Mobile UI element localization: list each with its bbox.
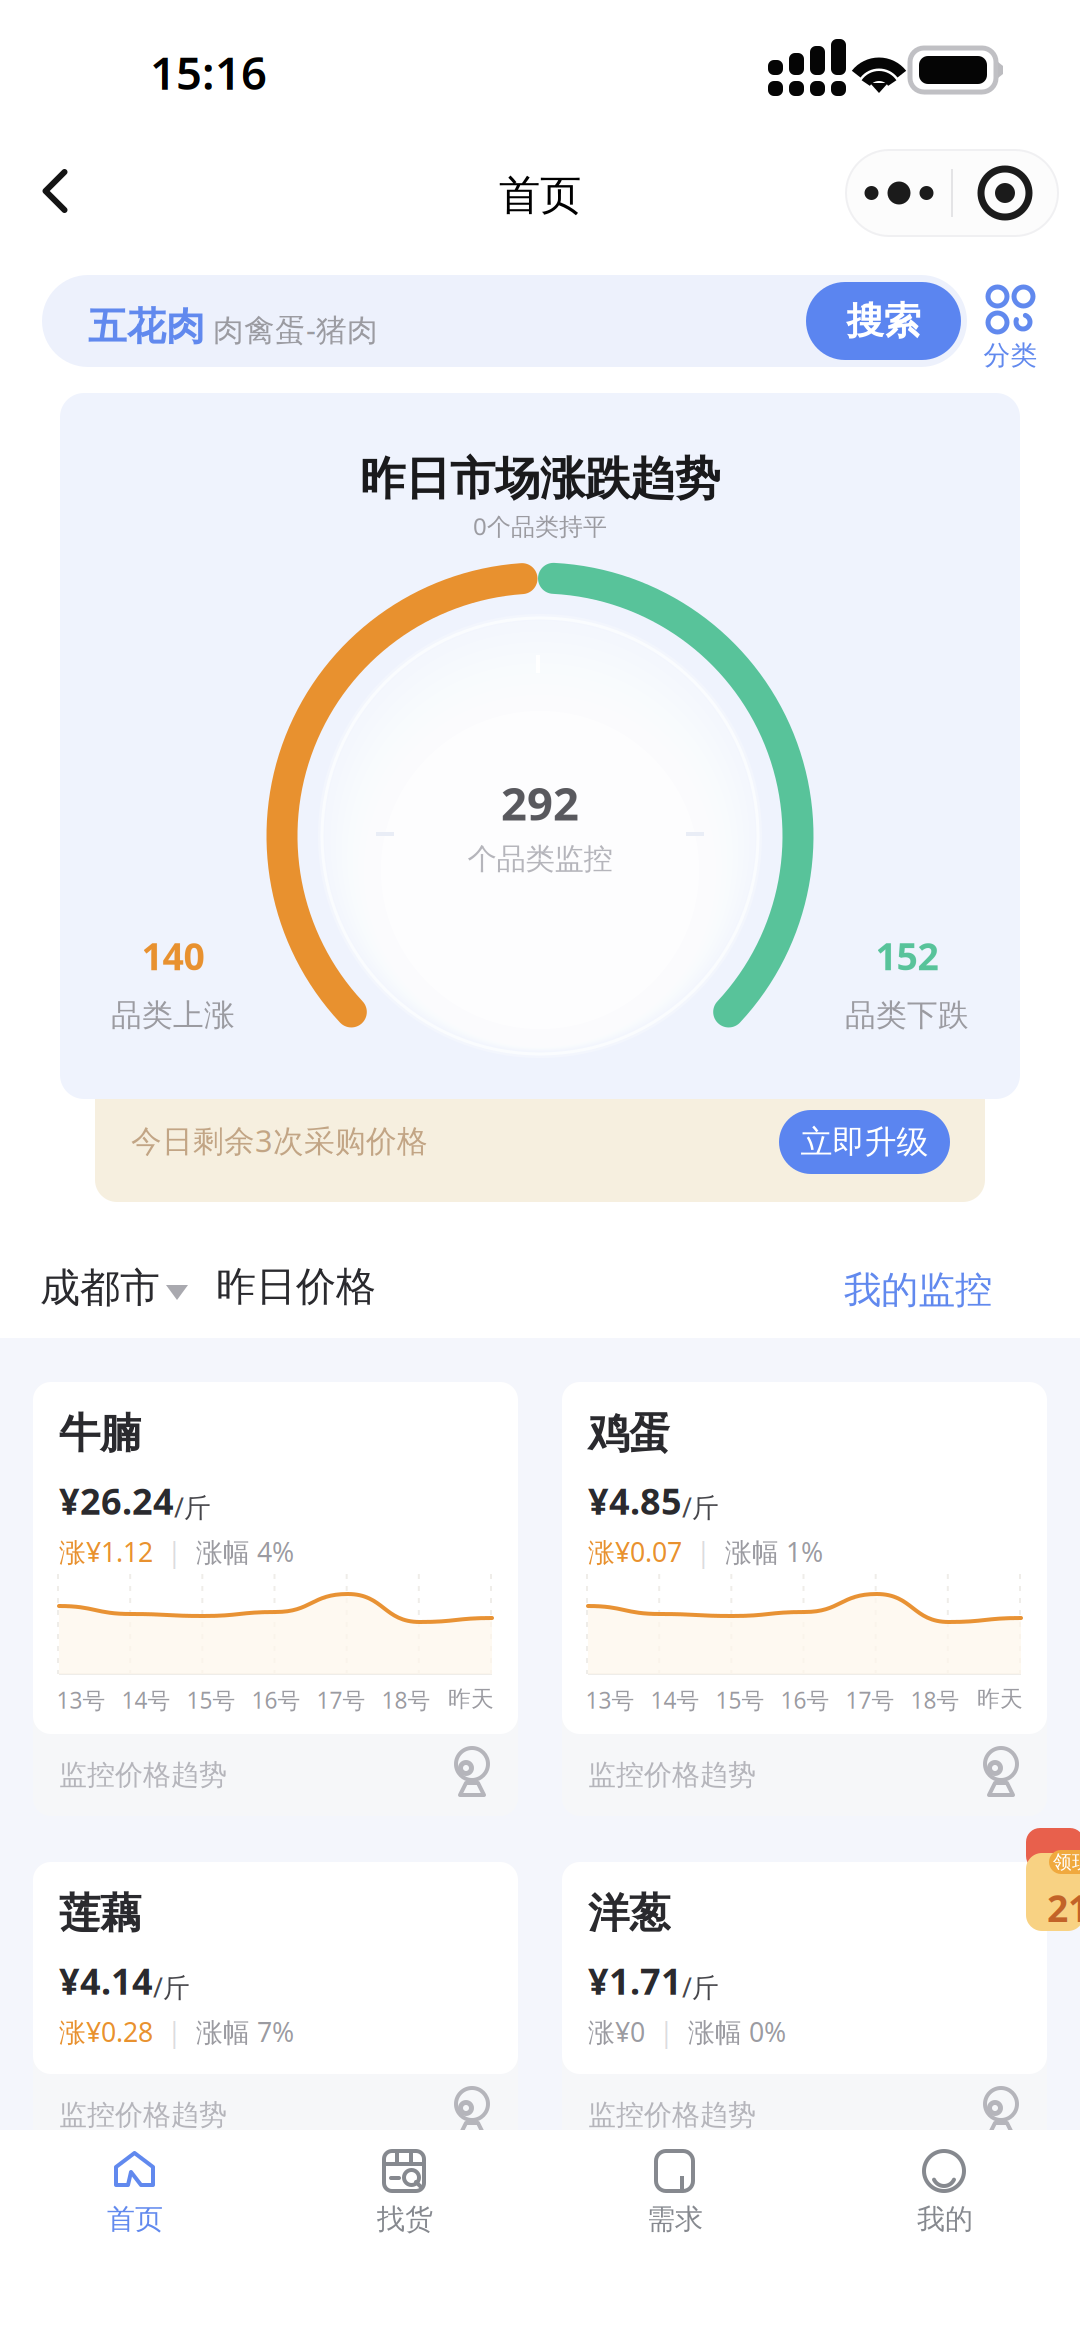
- staticText: 洋葱: [588, 1888, 670, 1939]
- staticText: 18号: [910, 1685, 959, 1715]
- staticText: 涨幅 0%: [688, 2014, 786, 2049]
- staticText: 16号: [780, 1685, 829, 1715]
- staticText: 17号: [316, 1685, 365, 1715]
- button[interactable]: 找货: [270, 2130, 540, 2260]
- staticText: 14号: [650, 1685, 699, 1715]
- button[interactable]: Coupon: [1025, 1828, 1080, 1931]
- staticText: ¥26.24: [59, 1477, 174, 1525]
- staticText: 监控价格趋势: [588, 1758, 756, 1792]
- staticText: 莲藕: [59, 1888, 141, 1939]
- staticText: |: [645, 2014, 688, 2049]
- staticText: 首页: [107, 2202, 163, 2236]
- button[interactable]: More: [847, 150, 951, 236]
- staticText: 鸡蛋: [588, 1408, 670, 1459]
- staticText: 21: [1047, 1883, 1080, 1933]
- button[interactable]: 需求: [540, 2130, 810, 2260]
- button[interactable]: 我的: [810, 2130, 1080, 2260]
- button[interactable]: Back: [7, 143, 103, 239]
- staticText: /斤: [174, 1489, 211, 1525]
- staticText: 17号: [845, 1685, 894, 1715]
- staticText: 13号: [56, 1685, 105, 1715]
- staticText: 首页: [499, 170, 581, 221]
- staticText: 涨¥1.12: [59, 1534, 153, 1569]
- staticText: |: [153, 1534, 196, 1569]
- staticText: 15号: [186, 1685, 235, 1715]
- staticText: 15:16: [150, 42, 267, 102]
- staticText: 16号: [251, 1685, 300, 1715]
- staticText: 涨¥0: [588, 2014, 645, 2049]
- staticText: 昨天: [448, 1685, 494, 1713]
- button[interactable]: 我的监控: [848, 1262, 988, 1318]
- button[interactable]: 成都市: [40, 1256, 190, 1320]
- staticText: 13号: [585, 1685, 634, 1715]
- staticText: ¥4.85: [588, 1477, 682, 1525]
- staticText: 今日剩余3次采购价格: [131, 1120, 428, 1161]
- staticText: 监控价格趋势: [588, 2098, 756, 2132]
- staticText: 牛腩: [59, 1408, 141, 1459]
- staticText: 监控价格趋势: [59, 1758, 227, 1792]
- button[interactable]: 莲藕: [33, 1862, 518, 2156]
- button[interactable]: 首页: [0, 2130, 270, 2260]
- staticText: 昨日价格: [216, 1262, 376, 1311]
- staticText: /斤: [682, 1969, 719, 2005]
- staticText: 品类上涨: [111, 997, 235, 1034]
- staticText: 立即升级: [800, 1122, 928, 1162]
- staticText: |: [153, 2014, 196, 2049]
- staticText: 领现: [1053, 1850, 1080, 1873]
- staticText: /斤: [682, 1489, 719, 1525]
- staticText: 昨天: [977, 1685, 1023, 1713]
- staticText: 涨¥0.07: [588, 1534, 682, 1569]
- staticText: 140: [141, 931, 204, 981]
- staticText: |: [682, 1534, 725, 1569]
- button[interactable]: 鸡蛋: [562, 1382, 1047, 1816]
- staticText: 涨幅 4%: [196, 1534, 294, 1569]
- staticText: 18号: [381, 1685, 430, 1715]
- staticText: 14号: [121, 1685, 170, 1715]
- staticText: 个品类监控: [467, 841, 612, 877]
- staticText: 品类下跌: [845, 997, 969, 1034]
- button[interactable]: Close: [953, 150, 1057, 236]
- staticText: 搜索: [846, 298, 920, 344]
- staticText: 我的: [917, 2202, 973, 2236]
- staticText: 我的监控: [844, 1267, 992, 1313]
- staticText: 涨幅 1%: [725, 1534, 823, 1569]
- staticText: 0个品类持平: [473, 510, 607, 542]
- staticText: 监控价格趋势: [59, 2098, 227, 2132]
- staticText: /斤: [153, 1969, 190, 2005]
- staticText: ¥1.71: [588, 1957, 682, 2005]
- button[interactable]: 分类: [988, 287, 1033, 377]
- staticText: 昨日市场涨跌趋势: [360, 451, 720, 507]
- staticText: 肉禽蛋-猪肉: [213, 309, 378, 350]
- staticText: 涨幅 7%: [196, 2014, 294, 2049]
- staticText: 五花肉: [88, 303, 205, 350]
- staticText: 292: [501, 773, 579, 833]
- button[interactable]: 搜索: [806, 282, 961, 360]
- staticText: 成都市: [40, 1263, 160, 1312]
- staticText: 15号: [715, 1685, 764, 1715]
- staticText: 找货: [377, 2202, 433, 2236]
- staticText: 涨¥0.28: [59, 2014, 153, 2049]
- staticText: 需求: [647, 2202, 703, 2236]
- staticText: 152: [875, 931, 938, 981]
- button[interactable]: 牛腩: [33, 1382, 518, 1816]
- button[interactable]: 洋葱: [562, 1862, 1047, 2156]
- button[interactable]: 立即升级: [779, 1110, 950, 1174]
- staticText: ¥4.14: [59, 1957, 153, 2005]
- staticText: 分类: [983, 339, 1037, 372]
